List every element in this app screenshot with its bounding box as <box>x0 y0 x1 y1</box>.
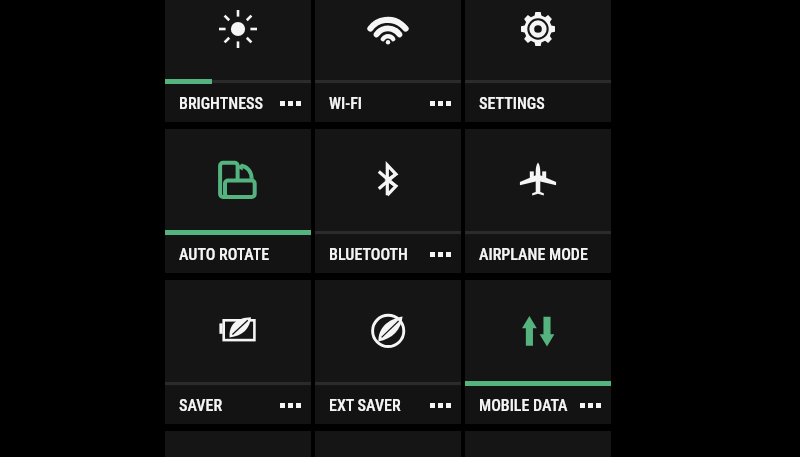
staticText: AIRPLANE MODE <box>479 245 588 264</box>
button[interactable]: MOBILE DATA <box>465 280 611 424</box>
button[interactable]: SETTINGS <box>465 0 611 122</box>
staticText: BRIGHTNESS <box>179 94 264 113</box>
button[interactable]: BRIGHTNESS <box>165 0 311 122</box>
staticText: MOBILE DATA <box>479 396 568 415</box>
staticText: SAVER <box>179 396 223 415</box>
button[interactable]: AIRPLANE MODE <box>465 129 611 273</box>
staticText: WI-FI <box>329 94 363 113</box>
button[interactable]: SAVER <box>165 280 311 424</box>
staticText: EXT SAVER <box>329 396 401 415</box>
button[interactable]: BLUETOOTH <box>315 129 461 273</box>
staticText: AUTO ROTATE <box>179 245 270 264</box>
button[interactable]: WI-FI <box>315 0 461 122</box>
staticText: BLUETOOTH <box>329 245 408 264</box>
button[interactable]: EXT SAVER <box>315 280 461 424</box>
button[interactable]: AUTO ROTATE <box>165 129 311 273</box>
staticText: SETTINGS <box>479 94 545 113</box>
